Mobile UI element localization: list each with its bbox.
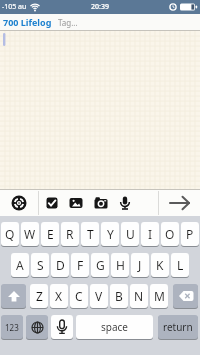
button[interactable]: Z xyxy=(30,284,48,308)
button[interactable]: H xyxy=(111,253,129,277)
staticText: G xyxy=(96,257,105,273)
staticText: O xyxy=(165,226,175,242)
staticText: N xyxy=(134,288,144,304)
button[interactable]: T xyxy=(81,222,99,246)
button[interactable]: D xyxy=(51,253,69,277)
button[interactable]: L xyxy=(171,253,189,277)
staticText: -105 au xyxy=(2,2,27,12)
button[interactable] xyxy=(89,190,113,216)
button[interactable]: 123 xyxy=(1,315,23,339)
staticText: P xyxy=(186,226,194,242)
button[interactable]: V xyxy=(90,284,108,308)
button[interactable]: F xyxy=(71,253,89,277)
staticText: M xyxy=(154,288,165,304)
staticText: return xyxy=(163,320,193,334)
button[interactable]: 700 Lifelog xyxy=(3,16,52,28)
button[interactable]: U xyxy=(121,222,139,246)
button[interactable]: X xyxy=(50,284,68,308)
button[interactable]: I xyxy=(141,222,159,246)
button[interactable]: return xyxy=(158,315,198,339)
staticText: 123 xyxy=(5,322,19,333)
staticText: Q xyxy=(5,226,15,242)
button[interactable]: space xyxy=(76,315,153,339)
staticText: J xyxy=(138,257,142,273)
staticText: D xyxy=(56,257,65,273)
button[interactable] xyxy=(159,190,200,216)
staticText: V xyxy=(95,288,103,304)
button[interactable]: J xyxy=(131,253,149,277)
button[interactable] xyxy=(0,190,38,216)
button[interactable]: Y xyxy=(101,222,119,246)
button[interactable]: N xyxy=(130,284,148,308)
button[interactable]: A xyxy=(11,253,29,277)
staticText: 20:39 xyxy=(91,2,109,12)
button[interactable]: O xyxy=(161,222,179,246)
staticText: T xyxy=(87,226,94,242)
button[interactable]: W xyxy=(21,222,39,246)
staticText: space xyxy=(101,320,128,334)
staticText: Z xyxy=(36,288,43,304)
staticText: U xyxy=(126,226,135,242)
button[interactable]: G xyxy=(91,253,109,277)
staticText: A xyxy=(16,257,24,273)
staticText: I xyxy=(148,226,153,242)
staticText: W xyxy=(24,226,36,242)
button[interactable] xyxy=(40,190,64,216)
button[interactable]: K xyxy=(151,253,169,277)
staticText: F xyxy=(77,257,84,273)
button[interactable]: B xyxy=(110,284,128,308)
button[interactable]: Q xyxy=(1,222,19,246)
staticText: R xyxy=(66,226,74,242)
button[interactable]: M xyxy=(150,284,168,308)
button[interactable] xyxy=(26,315,48,339)
staticText: K xyxy=(156,257,164,273)
staticText: C xyxy=(75,288,83,304)
button[interactable]: S xyxy=(31,253,49,277)
staticText: B xyxy=(115,288,123,304)
staticText: H xyxy=(116,257,125,273)
button[interactable] xyxy=(0,31,200,189)
staticText: X xyxy=(55,288,63,304)
button[interactable]: C xyxy=(70,284,88,308)
button[interactable] xyxy=(113,190,137,216)
button[interactable]: E xyxy=(41,222,59,246)
staticText: S xyxy=(37,257,44,273)
button[interactable] xyxy=(51,315,73,339)
button[interactable]: R xyxy=(61,222,79,246)
button[interactable] xyxy=(64,190,88,216)
button[interactable]: P xyxy=(181,222,199,246)
button[interactable] xyxy=(173,284,198,308)
staticText: E xyxy=(47,226,54,242)
button[interactable]: Tag... xyxy=(58,17,78,28)
staticText: Y xyxy=(107,226,114,242)
staticText: L xyxy=(177,257,184,273)
button[interactable] xyxy=(1,284,26,308)
